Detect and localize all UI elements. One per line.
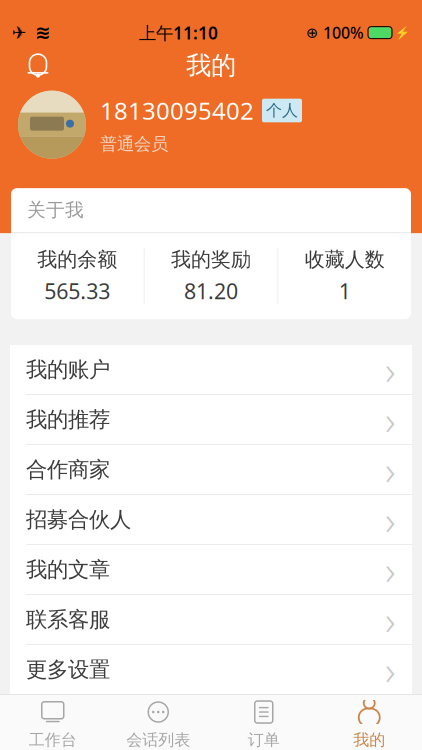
button[interactable]: 更多设置	[10, 645, 412, 694]
staticText: 我的	[186, 50, 236, 81]
staticText: 联系客服	[26, 606, 110, 633]
button[interactable]: 招募合伙人	[10, 495, 412, 544]
staticText: 收藏人数	[305, 247, 385, 272]
button[interactable]: 我的文章	[10, 545, 412, 594]
staticText: 招募合伙人	[26, 506, 131, 533]
staticText: 个人	[266, 101, 298, 120]
staticText: ›	[385, 343, 396, 396]
staticText: ›	[385, 443, 396, 496]
button[interactable]: 我的账户	[10, 345, 412, 394]
button[interactable]: 工作台	[0, 695, 105, 750]
staticText: 81.20	[184, 277, 238, 305]
staticText: 上午11:10	[139, 21, 218, 44]
staticText: ✈	[12, 23, 27, 42]
staticText: 我的账户	[26, 356, 110, 383]
staticText: 订单	[248, 730, 280, 750]
staticText: 普通会员	[100, 133, 168, 155]
staticText: ›	[385, 593, 396, 646]
staticText: 565.33	[44, 277, 110, 305]
button[interactable]: 订单	[211, 695, 316, 750]
staticText: 我的	[353, 730, 385, 750]
staticText: ›	[385, 393, 396, 446]
staticText: 我的推荐	[26, 406, 110, 433]
button[interactable]: 联系客服	[10, 595, 412, 644]
staticText: ≋	[35, 22, 51, 43]
staticText: 1	[339, 277, 351, 305]
staticText: ›	[385, 643, 396, 696]
staticText: 100%	[323, 22, 364, 43]
staticText: ›	[385, 493, 396, 546]
staticText: 更多设置	[26, 656, 110, 683]
staticText: 18130095402	[100, 95, 254, 126]
staticText: ⚡	[395, 26, 410, 39]
staticText: 工作台	[29, 730, 77, 750]
button[interactable]: 我的推荐	[10, 395, 412, 444]
button[interactable]: 合作商家	[10, 445, 412, 494]
staticText: 我的文章	[26, 556, 110, 583]
staticText: 我的余额	[37, 247, 117, 272]
button[interactable]: 我的	[316, 695, 422, 750]
staticText: ⊕	[306, 24, 318, 41]
staticText: 会话列表	[126, 730, 190, 750]
staticText: 我的奖励	[171, 247, 251, 272]
staticText: ›	[385, 543, 396, 596]
button[interactable]: 会话列表	[105, 695, 211, 750]
staticText: 关于我	[27, 199, 84, 222]
button[interactable]: 通知	[16, 46, 60, 86]
staticText: 合作商家	[26, 456, 110, 483]
